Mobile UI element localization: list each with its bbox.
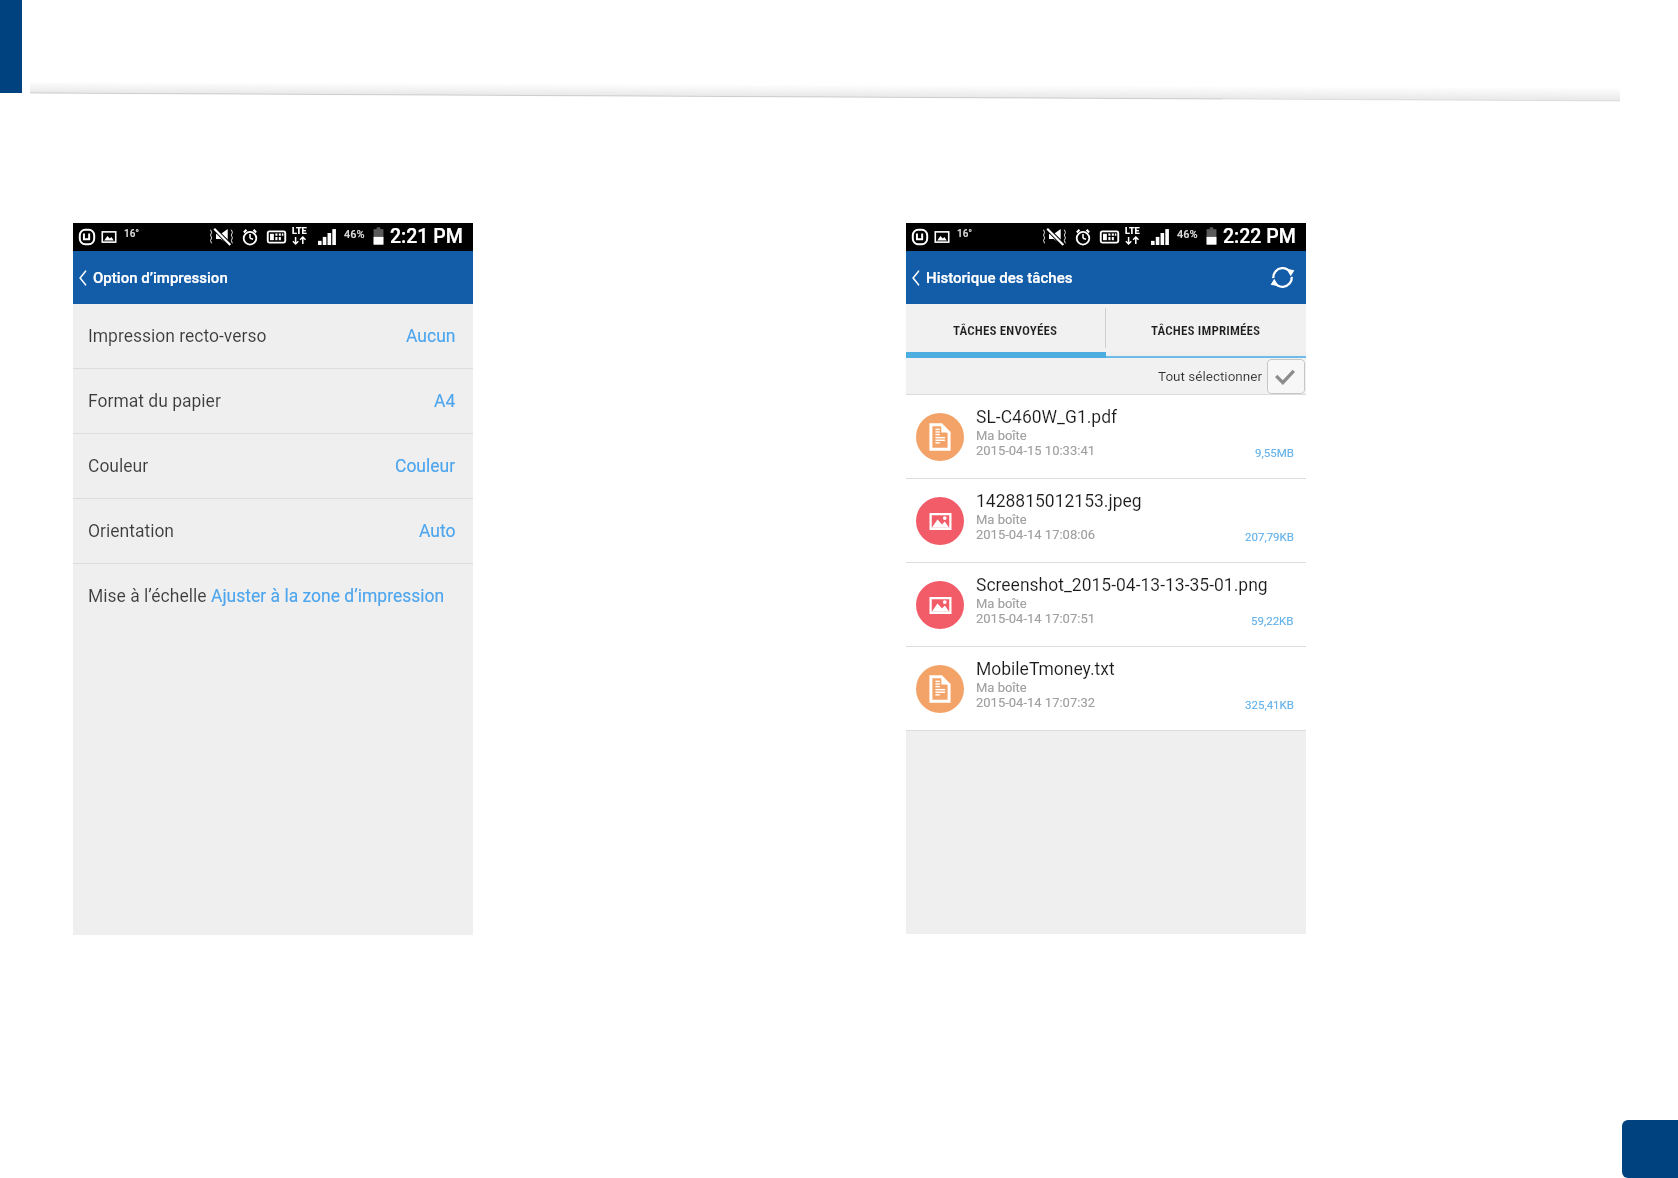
- button[interactable]: Mise à l’échelle: [73, 564, 473, 628]
- staticText: Orientation: [88, 521, 175, 542]
- staticText: Format du papier: [88, 391, 221, 412]
- button[interactable]: Retour: [73, 251, 240, 304]
- staticText: A4: [434, 391, 456, 412]
- staticText: LTE: [1125, 226, 1140, 237]
- button[interactable]: TÂCHES ENVOYÉES: [906, 304, 1105, 352]
- button[interactable]: 1428815012153.jpeg: [906, 479, 1306, 562]
- staticText: Auto: [419, 521, 456, 542]
- button[interactable]: MobileTmoney.txt: [906, 647, 1306, 730]
- staticText: 2015-04-14 17:07:51: [976, 611, 1095, 626]
- staticText: LTE: [292, 226, 307, 237]
- staticText: 2:22 PM: [1223, 225, 1296, 248]
- staticText: 2015-04-14 17:08:06: [976, 527, 1095, 542]
- button[interactable]: Impression recto-verso: [73, 304, 473, 368]
- staticText: Ma boîte: [976, 428, 1027, 443]
- staticText: Ma boîte: [976, 680, 1027, 695]
- staticText: Ma boîte: [976, 596, 1027, 611]
- button[interactable]: Screenshot_2015-04-13-13-35-01.png: [906, 563, 1306, 646]
- staticText: 9,55MB: [1255, 446, 1294, 459]
- button[interactable]: Actualiser: [1258, 251, 1306, 304]
- other: Retour: [77, 269, 88, 287]
- staticText: 1428815012153.jpeg: [976, 491, 1142, 512]
- staticText: Screenshot_2015-04-13-13-35-01.png: [976, 575, 1268, 596]
- staticText: 59,22KB: [1251, 614, 1294, 627]
- button[interactable]: Tout sélectionner: [1267, 359, 1305, 394]
- staticText: Option d’impression: [93, 269, 228, 287]
- staticText: 46%: [344, 228, 365, 241]
- button[interactable]: Orientation: [73, 499, 473, 563]
- staticText: TÂCHES ENVOYÉES: [953, 323, 1058, 338]
- staticText: SL-C460W_G1.pdf: [976, 407, 1118, 428]
- staticText: Mise à l’échelle: [88, 586, 211, 607]
- staticText: Tout sélectionner: [1158, 368, 1262, 384]
- button[interactable]: Format du papier: [73, 369, 473, 433]
- staticText: 16°: [957, 228, 973, 240]
- staticText: MobileTmoney.txt: [976, 659, 1115, 680]
- button[interactable]: Retour: [906, 251, 1083, 304]
- staticText: Ma boîte: [976, 512, 1027, 527]
- button[interactable]: Tout sélectionner: [906, 358, 1306, 394]
- staticText: Aucun: [406, 326, 456, 347]
- button[interactable]: Couleur: [73, 434, 473, 498]
- staticText: 46%: [1177, 228, 1198, 241]
- staticText: Couleur: [395, 456, 456, 477]
- staticText: Historique des tâches: [926, 269, 1073, 287]
- button[interactable]: TÂCHES IMPRIMÉES: [1106, 304, 1306, 352]
- staticText: 2015-04-15 10:33:41: [976, 443, 1095, 458]
- staticText: 325,41KB: [1245, 698, 1294, 711]
- button[interactable]: SL-C460W_G1.pdf: [906, 395, 1306, 478]
- staticText: 16°: [124, 228, 140, 240]
- staticText: TÂCHES IMPRIMÉES: [1151, 323, 1261, 338]
- other: Retour: [910, 269, 921, 287]
- staticText: Couleur: [88, 456, 149, 477]
- staticText: Ajuster à la zone d’impression: [211, 586, 445, 607]
- staticText: 2:21 PM: [390, 225, 463, 248]
- staticText: 207,79KB: [1245, 530, 1294, 543]
- staticText: Impression recto-verso: [88, 326, 267, 347]
- staticText: 2015-04-14 17:07:32: [976, 695, 1095, 710]
